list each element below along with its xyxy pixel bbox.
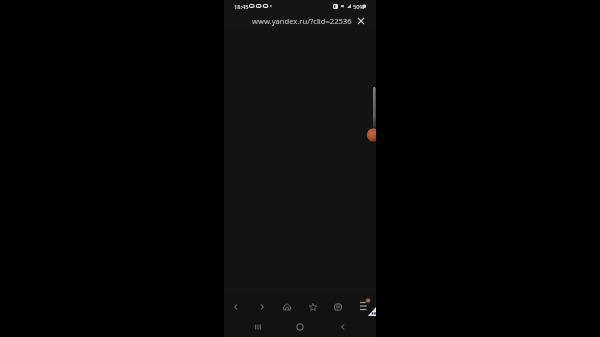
staticText: www.yandex.ru/?clid=22536: [252, 16, 352, 26]
button[interactable]: Close tab: [354, 14, 368, 28]
button[interactable]: Home: [293, 320, 307, 334]
button[interactable]: Home: [280, 300, 294, 314]
button[interactable]: Tabs: [331, 300, 345, 314]
button[interactable]: Forward: [255, 300, 269, 314]
staticText: 18:45: [234, 3, 249, 11]
button[interactable]: Back: [229, 300, 243, 314]
button[interactable]: Bookmarks: [306, 300, 320, 314]
button[interactable]: Back: [336, 320, 350, 334]
button[interactable]: Recent apps: [251, 320, 265, 334]
button[interactable]: Menu: [357, 296, 371, 312]
staticText: 50%: [353, 3, 365, 11]
button[interactable]: www.yandex.ru/?clid=22536: [224, 14, 376, 28]
